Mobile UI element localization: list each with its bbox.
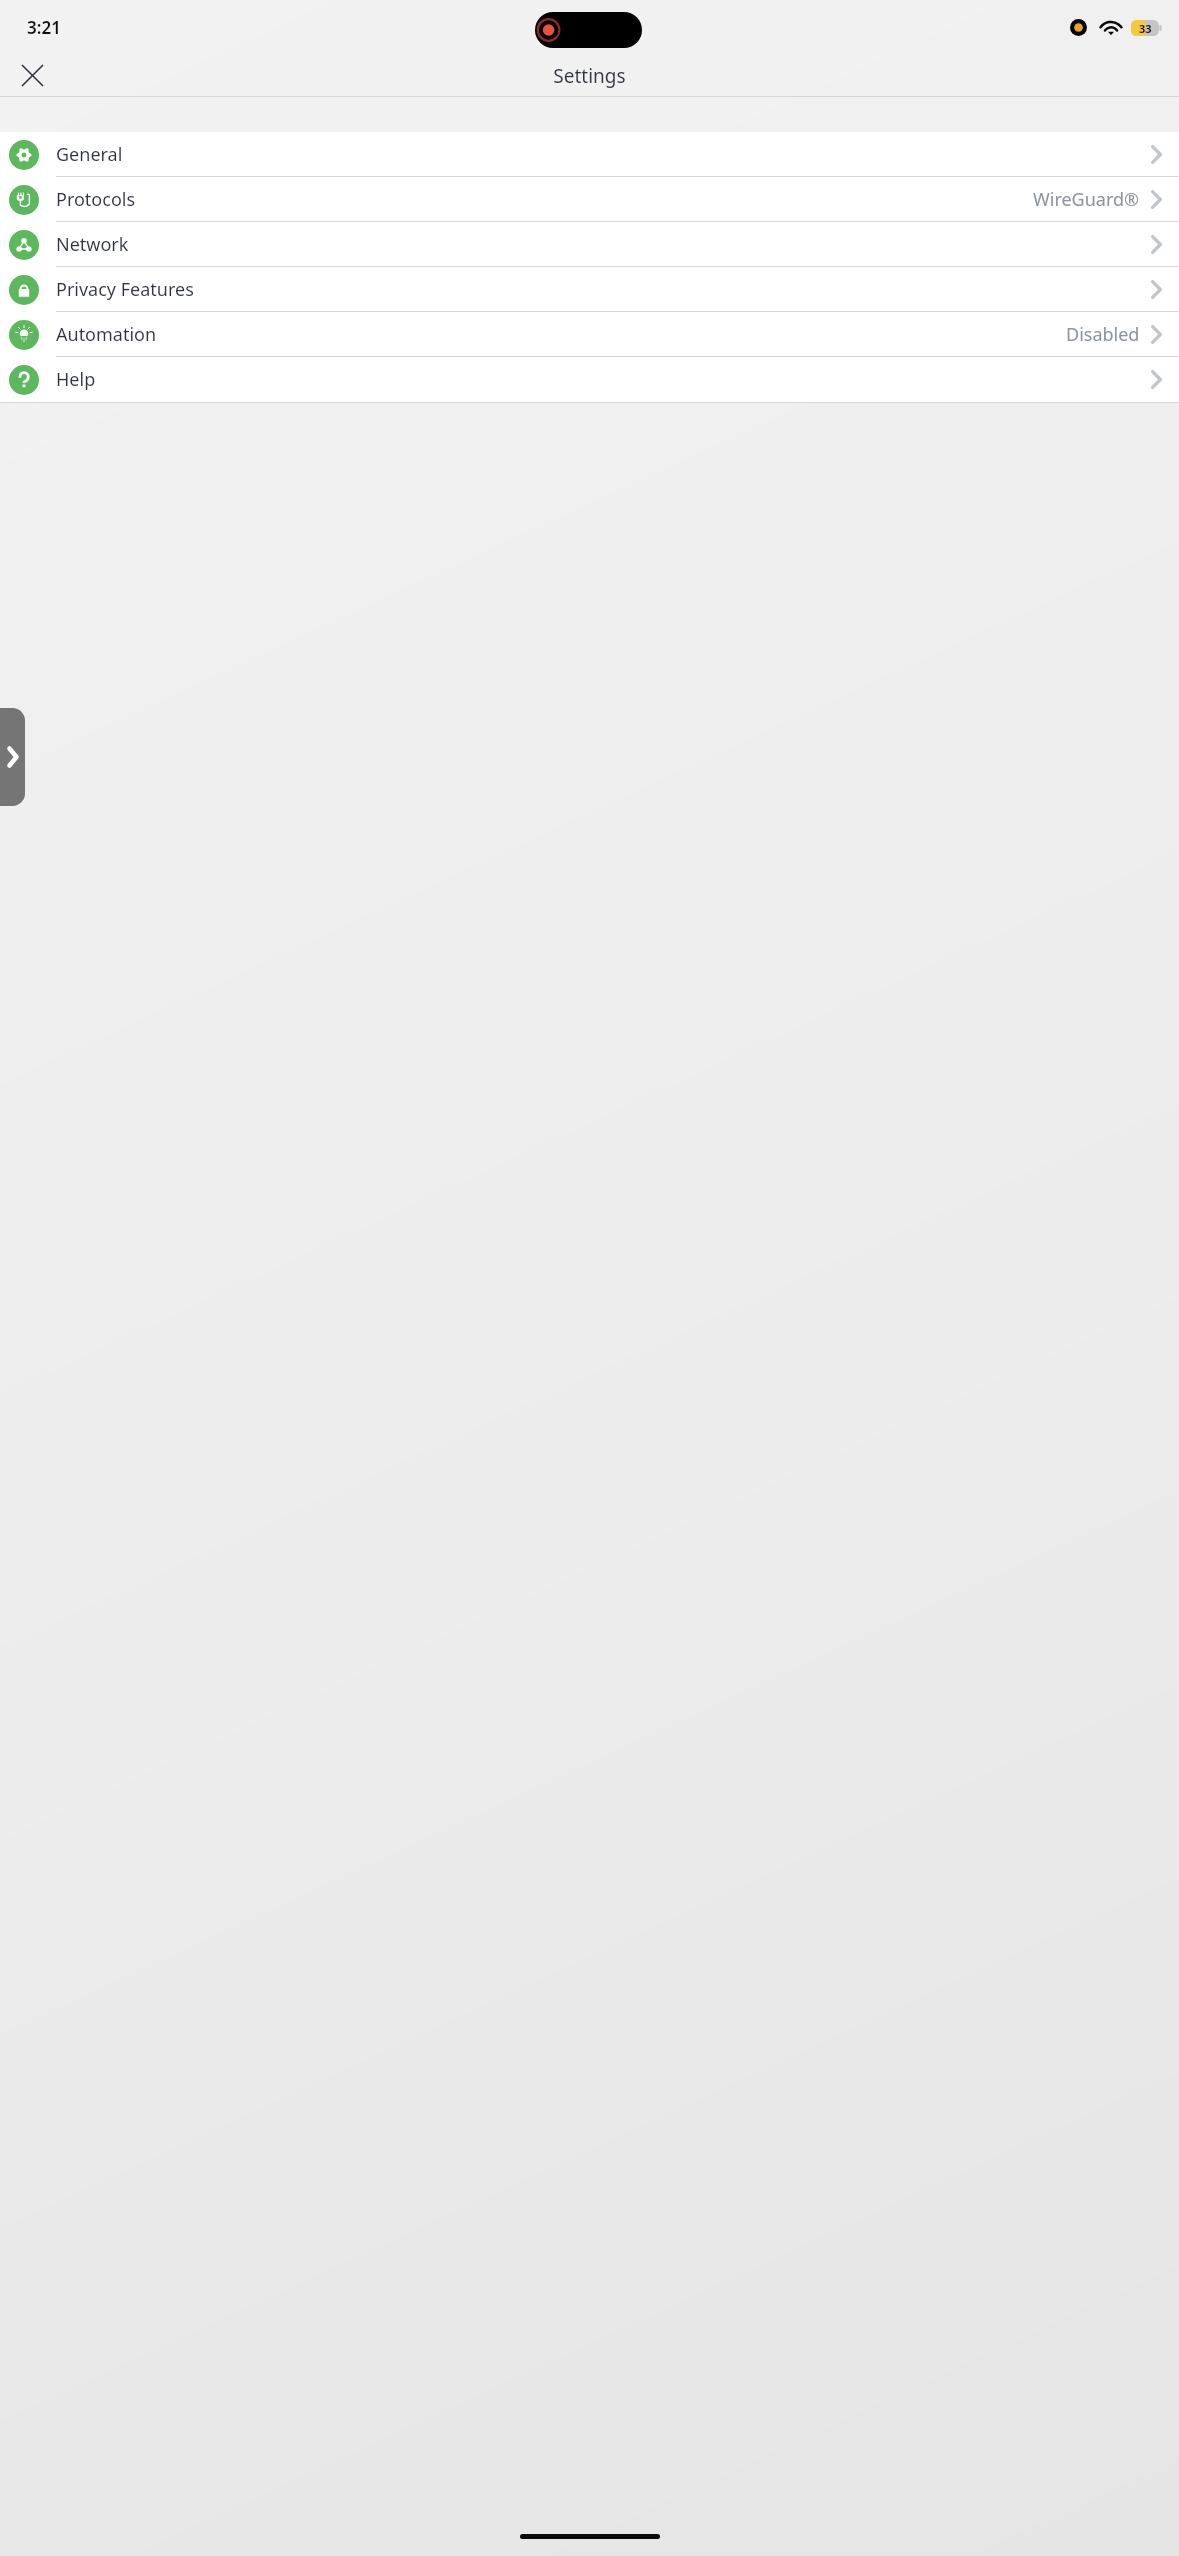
button[interactable]: Help: [0, 357, 1179, 402]
button[interactable]: General: [0, 132, 1179, 177]
staticText: Automation: [56, 322, 157, 347]
staticText: 3:21: [27, 16, 61, 39]
button[interactable]: Automation: [0, 312, 1179, 357]
button[interactable]: Network: [0, 222, 1179, 267]
staticText: Network: [56, 232, 129, 257]
button[interactable]: Protocols: [0, 177, 1179, 222]
button[interactable]: Privacy Features: [0, 267, 1179, 312]
staticText: Settings: [553, 63, 626, 89]
staticText: 33: [1139, 21, 1152, 36]
staticText: WireGuard®: [1033, 187, 1140, 212]
staticText: General: [56, 142, 123, 167]
button[interactable]: Open drawer: [0, 708, 25, 806]
staticText: Disabled: [1066, 322, 1140, 347]
staticText: Privacy Features: [56, 277, 194, 302]
button[interactable]: Close: [8, 55, 56, 96]
staticText: Protocols: [56, 187, 136, 212]
staticText: Help: [56, 367, 96, 392]
